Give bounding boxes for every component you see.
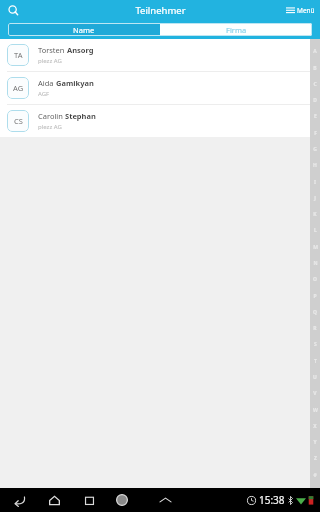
staticText: AGF <box>38 90 50 98</box>
staticText: B <box>313 65 317 72</box>
staticText: S <box>314 341 317 348</box>
button[interactable]: Menü <box>286 0 315 20</box>
button[interactable]: Alphabet index <box>310 39 320 488</box>
staticText: plezz AG <box>38 57 62 65</box>
button[interactable]: TA <box>0 39 320 72</box>
button[interactable]: Expand <box>154 489 176 511</box>
button[interactable]: Screenshot <box>111 489 133 511</box>
staticText: X <box>313 423 317 430</box>
button[interactable]: Home <box>43 489 65 511</box>
staticText: U <box>313 374 317 381</box>
staticText: K <box>313 211 317 218</box>
button[interactable]: 15:38 <box>247 493 314 507</box>
button[interactable]: Firma <box>160 23 312 36</box>
staticText: 15:38 <box>259 493 285 507</box>
staticText: Q <box>313 309 317 316</box>
button[interactable]: Name <box>8 23 160 36</box>
staticText: D <box>313 97 317 104</box>
staticText: Gamikyan <box>56 78 94 88</box>
staticText: J <box>314 195 316 202</box>
staticText: Menü <box>297 6 315 15</box>
staticText: G <box>313 146 317 153</box>
staticText: # <box>313 472 317 479</box>
staticText: TA <box>14 50 23 60</box>
staticText: plezz AG <box>38 123 62 131</box>
staticText: F <box>314 130 317 137</box>
staticText: Aida <box>38 78 56 88</box>
staticText: V <box>313 390 317 397</box>
staticText: T <box>314 358 317 365</box>
staticText: Z <box>314 455 317 462</box>
staticText: R <box>313 325 317 332</box>
staticText: N <box>313 260 318 267</box>
staticText: Firma <box>226 25 247 35</box>
staticText: Y <box>313 439 317 446</box>
button[interactable]: Search <box>0 0 26 20</box>
staticText: Teilnehmer <box>135 4 186 17</box>
staticText: E <box>314 113 317 120</box>
staticText: W <box>313 407 318 414</box>
staticText: CS <box>14 116 23 126</box>
staticText: L <box>314 227 317 234</box>
staticText: Torsten <box>38 45 67 55</box>
button[interactable]: Recent apps <box>78 489 100 511</box>
staticText: O <box>313 276 317 283</box>
staticText: M <box>313 244 318 251</box>
staticText: C <box>313 81 317 88</box>
staticText: Stephan <box>65 111 96 121</box>
staticText: Name <box>73 25 95 35</box>
staticText: A <box>313 48 317 55</box>
staticText: P <box>313 293 317 300</box>
button[interactable]: CS <box>0 105 320 137</box>
staticText: AG <box>13 83 24 93</box>
button[interactable]: Back <box>8 489 30 511</box>
staticText: Carolin <box>38 111 65 121</box>
button[interactable]: AG <box>0 72 320 105</box>
staticText: Ansorg <box>67 45 94 55</box>
staticText: I <box>314 179 316 186</box>
staticText: H <box>313 162 317 169</box>
